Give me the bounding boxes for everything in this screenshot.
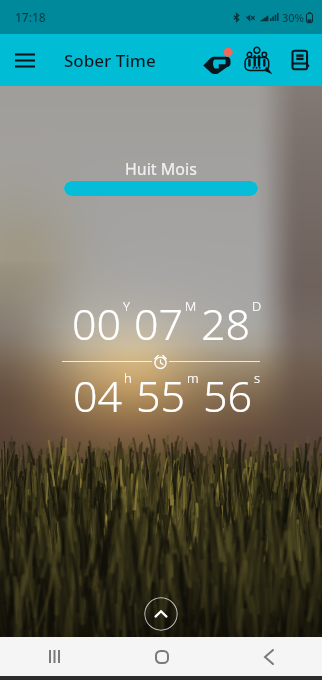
staticText: 55	[136, 366, 186, 425]
staticText: 04	[73, 366, 123, 425]
button[interactable]: Home	[108, 637, 215, 676]
staticText: D	[252, 297, 262, 315]
staticText: Sober Time	[64, 49, 156, 72]
staticText: h	[124, 369, 132, 387]
staticText: 28	[201, 294, 251, 353]
staticText: Huit Mois	[125, 158, 197, 180]
staticText: m	[187, 369, 199, 387]
staticText: Y	[123, 297, 130, 315]
staticText: 07	[134, 294, 184, 353]
staticText: M	[185, 297, 197, 315]
button[interactable]: Expand details	[144, 597, 178, 631]
button[interactable]: Community	[237, 34, 277, 86]
button[interactable]: Recents	[0, 637, 108, 676]
staticText: 17:18	[15, 9, 46, 25]
button[interactable]: Journal	[277, 34, 322, 86]
staticText: s	[254, 369, 261, 387]
staticText: 56	[203, 366, 253, 425]
button[interactable]: Motivation	[197, 34, 237, 86]
button[interactable]: Back	[215, 637, 322, 676]
button[interactable]: Menu	[0, 34, 50, 86]
staticText: 30%	[282, 10, 304, 25]
staticText: 00	[72, 294, 122, 353]
